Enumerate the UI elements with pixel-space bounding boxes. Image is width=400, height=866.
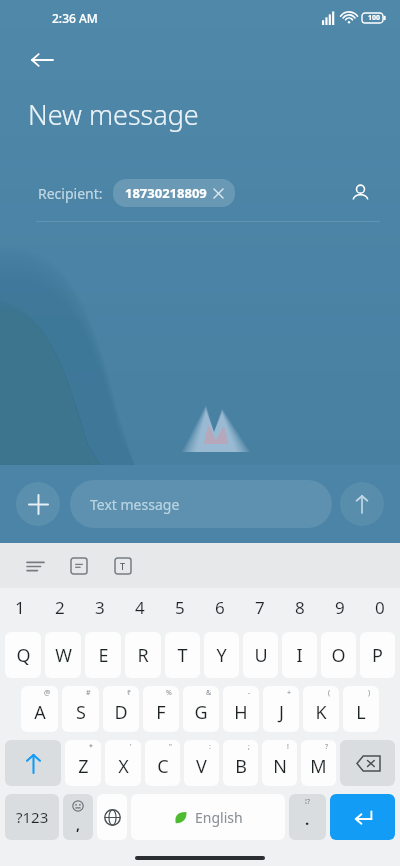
staticText: X	[118, 754, 129, 779]
button[interactable]: Y	[204, 632, 239, 678]
staticText: Z	[78, 754, 89, 779]
staticText: Text message	[90, 495, 180, 514]
button[interactable]: English	[131, 794, 285, 840]
button[interactable]: Text editing	[106, 549, 140, 583]
staticText: ?123	[16, 807, 49, 827]
staticText: R	[137, 643, 149, 668]
button[interactable]: ?	[301, 740, 336, 786]
button[interactable]: P	[360, 632, 395, 678]
button[interactable]: -	[223, 686, 259, 732]
staticText: J	[279, 700, 284, 725]
button[interactable]: @	[21, 686, 58, 732]
button[interactable]: 3	[80, 588, 120, 626]
button[interactable]: Text message	[70, 480, 332, 528]
staticText: :	[209, 742, 211, 752]
button[interactable]: *	[65, 740, 101, 786]
staticText: %	[166, 688, 172, 698]
staticText: @	[44, 688, 51, 698]
button[interactable]: Enter	[330, 794, 395, 840]
staticText: 7	[255, 596, 265, 619]
staticText: ?	[325, 742, 329, 752]
button[interactable]: 9	[320, 588, 360, 626]
staticText: 3	[95, 596, 105, 619]
staticText: ₹	[127, 688, 132, 698]
button[interactable]: 1	[0, 588, 40, 626]
staticText: S	[76, 700, 86, 725]
staticText: ⁞?	[305, 797, 310, 807]
staticText: '	[130, 742, 132, 752]
staticText: English	[195, 808, 243, 827]
staticText: +	[287, 688, 292, 698]
button[interactable]: 4	[120, 588, 160, 626]
button[interactable]: Choose contact	[340, 173, 380, 213]
staticText: F	[156, 700, 166, 725]
staticText: 6	[215, 596, 225, 619]
button[interactable]: 7	[240, 588, 280, 626]
staticText: "	[169, 742, 172, 752]
staticText: Recipient:	[38, 184, 103, 203]
button[interactable]: 8	[280, 588, 320, 626]
staticText: 4	[135, 596, 145, 619]
button[interactable]: %	[143, 686, 179, 732]
button[interactable]: 6	[200, 588, 240, 626]
staticText: 9	[335, 596, 345, 619]
staticText: #	[86, 688, 91, 698]
staticText: O	[331, 643, 346, 668]
button[interactable]: Change language	[97, 794, 127, 840]
button[interactable]: Shift	[5, 740, 61, 786]
button[interactable]: &	[183, 686, 219, 732]
button[interactable]: :	[184, 740, 219, 786]
staticText: B	[235, 754, 247, 779]
button[interactable]: Emoji and comma	[63, 794, 93, 840]
staticText: 1	[15, 596, 25, 619]
button[interactable]: Clipboard	[62, 549, 96, 583]
staticText: H	[234, 700, 248, 725]
button[interactable]: )	[343, 686, 379, 732]
button[interactable]: Backspace	[340, 740, 395, 786]
button[interactable]: Menu	[18, 549, 52, 583]
staticText: D	[114, 700, 128, 725]
button[interactable]: Send	[340, 482, 384, 526]
button[interactable]: Add attachment	[16, 482, 60, 526]
button[interactable]: 0	[360, 588, 400, 626]
staticText: K	[315, 700, 327, 725]
staticText: 2:36 AM	[52, 10, 98, 26]
button[interactable]: O	[321, 632, 356, 678]
staticText: Y	[216, 643, 227, 668]
button[interactable]: T	[165, 632, 200, 678]
staticText: !	[287, 742, 289, 752]
staticText: 0	[375, 596, 385, 619]
button[interactable]: 5	[160, 588, 200, 626]
button[interactable]: 2	[40, 588, 80, 626]
button[interactable]: "	[145, 740, 180, 786]
button[interactable]: ₹	[103, 686, 139, 732]
button[interactable]: W	[45, 632, 81, 678]
staticText: 18730218809	[125, 184, 207, 202]
button[interactable]: I	[282, 632, 317, 678]
staticText: M	[310, 754, 327, 779]
button[interactable]: ?123	[5, 794, 59, 840]
staticText: A	[34, 700, 46, 725]
button[interactable]: (	[303, 686, 339, 732]
button[interactable]: ;	[223, 740, 258, 786]
staticText: U	[254, 643, 268, 668]
button[interactable]: R	[125, 632, 161, 678]
staticText: I	[296, 643, 303, 668]
button[interactable]: U	[243, 632, 278, 678]
button[interactable]: +	[263, 686, 299, 732]
staticText: (	[328, 688, 331, 698]
button[interactable]: ⁞?	[289, 794, 326, 840]
button[interactable]: Q	[5, 632, 41, 678]
button[interactable]: E	[85, 632, 121, 678]
button[interactable]: Back	[18, 36, 66, 84]
button[interactable]: 18730218809	[113, 179, 235, 207]
staticText: Q	[16, 643, 31, 668]
staticText: *	[89, 742, 93, 752]
button[interactable]: #	[62, 686, 99, 732]
button[interactable]: '	[105, 740, 141, 786]
button[interactable]: !	[262, 740, 297, 786]
staticText: -	[248, 688, 251, 698]
staticText: &	[206, 688, 212, 698]
staticText: N	[273, 754, 287, 779]
staticText: )	[368, 688, 371, 698]
